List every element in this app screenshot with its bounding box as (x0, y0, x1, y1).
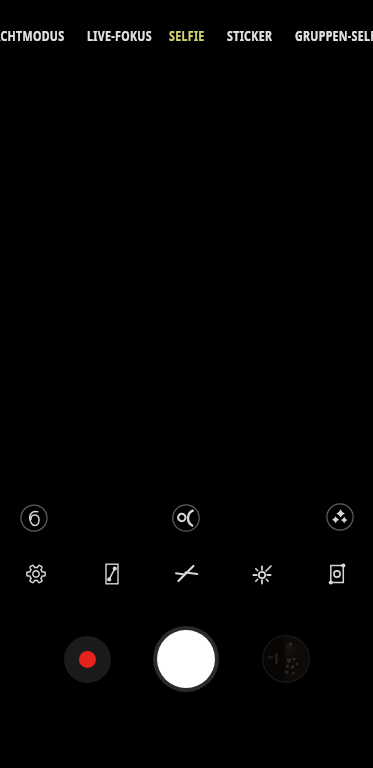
button[interactable]: STICKER (227, 25, 291, 45)
button[interactable]: GRUPPEN-SELFIE (295, 25, 373, 45)
button[interactable]: Gallery (262, 635, 310, 683)
button[interactable]: Flash off (169, 556, 205, 592)
button[interactable]: Camera settings (18, 556, 54, 592)
button[interactable]: SELFIE (169, 25, 220, 45)
staticText: LIVE-FOKUS (87, 25, 152, 45)
button[interactable]: Switch camera (319, 556, 355, 592)
staticText: SELFIE (169, 25, 205, 45)
button[interactable]: NACHTMODUS (0, 25, 98, 45)
button[interactable]: Record video (64, 636, 111, 683)
button[interactable]: Take photo (153, 626, 219, 692)
button[interactable]: Photo filters (320, 497, 360, 537)
button[interactable]: LIVE-FOKUS (87, 25, 179, 45)
button[interactable]: Aspect ratio (94, 556, 130, 592)
button[interactable]: Beauty effect (14, 498, 54, 538)
staticText: GRUPPEN-SELFIE (295, 25, 373, 45)
staticText: STICKER (227, 25, 272, 45)
button[interactable]: Brightness (244, 557, 280, 593)
button[interactable]: Bokeh effect (166, 498, 206, 538)
staticText: NACHTMODUS (0, 25, 65, 45)
